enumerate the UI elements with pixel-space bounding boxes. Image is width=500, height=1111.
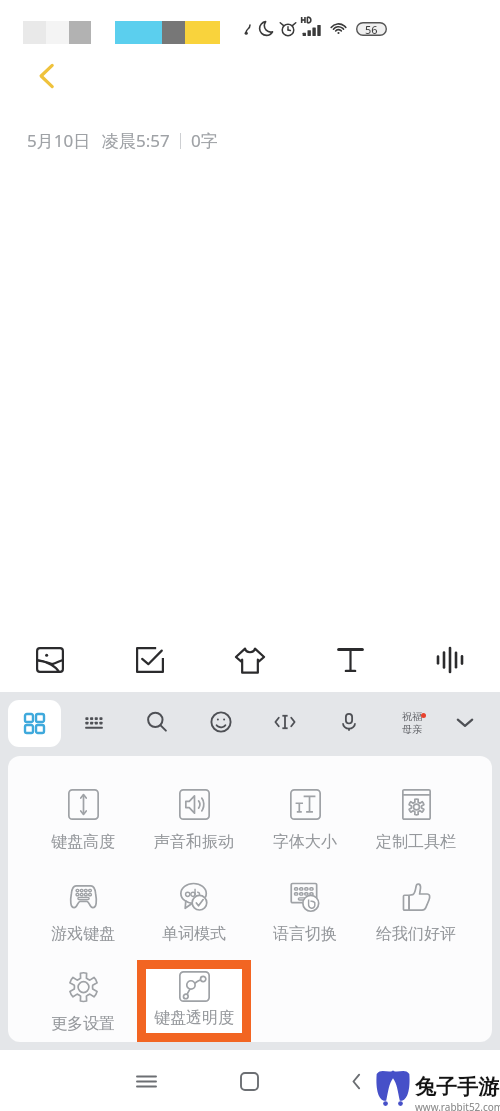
staticText: 语言切换: [273, 924, 337, 944]
staticText: 给我们好评: [376, 924, 456, 944]
button[interactable]: Recents: [122, 1057, 170, 1105]
button[interactable]: 游戏键盘: [26, 870, 140, 952]
button[interactable]: 字体大小: [248, 778, 362, 860]
button[interactable]: 声音和振动: [137, 778, 251, 860]
staticText: 键盘透明度: [154, 1008, 234, 1028]
staticText: 0字: [191, 129, 218, 152]
staticText: www.rabbit52.com: [415, 1100, 500, 1111]
button[interactable]: Insert image: [0, 634, 100, 686]
button[interactable]: Search: [133, 699, 181, 744]
button[interactable]: Home: [225, 1057, 273, 1105]
button[interactable]: Back: [332, 1057, 380, 1105]
button[interactable]: Collapse keyboard: [441, 699, 489, 744]
button[interactable]: Text style: [300, 634, 400, 686]
button[interactable]: 语言切换: [248, 870, 362, 952]
button[interactable]: 单词模式: [137, 870, 251, 952]
staticText: 母亲: [402, 723, 422, 736]
button[interactable]: Move cursor: [261, 699, 309, 744]
button[interactable]: Panels: [8, 700, 61, 747]
staticText: 字体大小: [273, 832, 337, 852]
button[interactable]: 键盘透明度: [146, 969, 242, 1033]
button[interactable]: Checklist: [100, 634, 200, 686]
button[interactable]: Blessings: [386, 701, 438, 745]
staticText: 单词模式: [162, 924, 226, 944]
staticText: 兔子手游: [415, 1074, 499, 1100]
button[interactable]: Voice note: [400, 634, 500, 686]
staticText: 键盘高度: [51, 832, 115, 852]
staticText: 祝福: [402, 710, 422, 723]
button[interactable]: Sticker: [200, 634, 300, 686]
staticText: 56: [365, 22, 378, 36]
button[interactable]: Back: [22, 52, 70, 100]
button[interactable]: Voice input: [325, 699, 373, 744]
button[interactable]: Keyboard: [70, 699, 118, 744]
staticText: 更多设置: [51, 1014, 115, 1034]
staticText: 凌晨5:57: [102, 129, 170, 152]
staticText: 游戏键盘: [51, 924, 115, 944]
button[interactable]: 更多设置: [26, 960, 140, 1042]
button[interactable]: 定制工具栏: [359, 778, 473, 860]
button[interactable]: Emoji: [197, 699, 245, 744]
button[interactable]: 给我们好评: [359, 870, 473, 952]
button[interactable]: 键盘高度: [26, 778, 140, 860]
staticText: 声音和振动: [154, 832, 234, 852]
staticText: 5月10日: [27, 129, 91, 152]
staticText: 定制工具栏: [376, 832, 456, 852]
